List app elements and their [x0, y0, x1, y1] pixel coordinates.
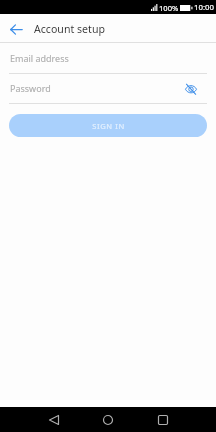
button[interactable]: Show password: [182, 80, 199, 97]
staticText: 10:00: [194, 2, 214, 13]
staticText: Password: [10, 82, 51, 94]
staticText: SIGN IN: [92, 121, 125, 131]
staticText: Email address: [10, 52, 69, 64]
button[interactable]: Back: [42, 408, 66, 432]
button[interactable]: Home: [96, 408, 120, 432]
button[interactable]: Password: [9, 76, 207, 103]
button[interactable]: SIGN IN: [9, 114, 207, 137]
staticText: 100%: [159, 3, 179, 13]
button[interactable]: Email address: [9, 46, 207, 73]
button[interactable]: Back: [4, 17, 28, 41]
button[interactable]: Recents: [151, 408, 175, 432]
staticText: Account setup: [34, 22, 105, 36]
